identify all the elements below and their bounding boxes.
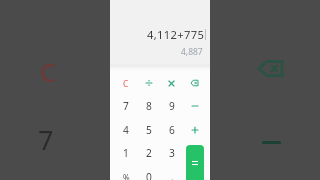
staticText: 4,112+775 (147, 27, 205, 42)
staticText: 5 (146, 123, 152, 137)
staticText: 7 (38, 122, 54, 150)
button[interactable]: C (115, 72, 137, 94)
button[interactable]: 8 (138, 95, 160, 117)
staticText: 4 (123, 123, 129, 137)
staticText: 1 (123, 146, 129, 160)
button[interactable]: Divide (138, 72, 160, 94)
button[interactable]: . (161, 166, 183, 180)
staticText: % (123, 172, 130, 180)
staticText: 7 (123, 99, 129, 113)
staticText: 4,887 (181, 46, 203, 58)
button[interactable]: 1 (115, 142, 137, 164)
button[interactable]: 5 (138, 119, 160, 141)
button[interactable]: 6 (161, 119, 183, 141)
button[interactable]: Minus (184, 95, 206, 117)
button[interactable]: Multiply (160, 72, 182, 94)
button[interactable]: % (115, 166, 137, 180)
staticText: 0 (146, 170, 152, 180)
button[interactable]: 4 (115, 119, 137, 141)
button[interactable]: 9 (161, 95, 183, 117)
button[interactable]: 2 (138, 142, 160, 164)
button[interactable]: Backspace (183, 72, 205, 94)
button[interactable]: Equals (186, 145, 204, 180)
staticText: 6 (169, 123, 175, 137)
staticText: 3 (169, 146, 175, 160)
staticText: 8 (146, 99, 152, 113)
staticText: C (40, 55, 56, 83)
button[interactable]: Plus (184, 119, 206, 141)
button[interactable]: 7 (115, 95, 137, 117)
button[interactable]: 0 (138, 166, 160, 180)
staticText: 2 (146, 146, 152, 160)
staticText: . (171, 170, 174, 180)
staticText: 9 (169, 99, 175, 113)
button[interactable]: 3 (161, 142, 183, 164)
staticText: C (123, 78, 129, 89)
